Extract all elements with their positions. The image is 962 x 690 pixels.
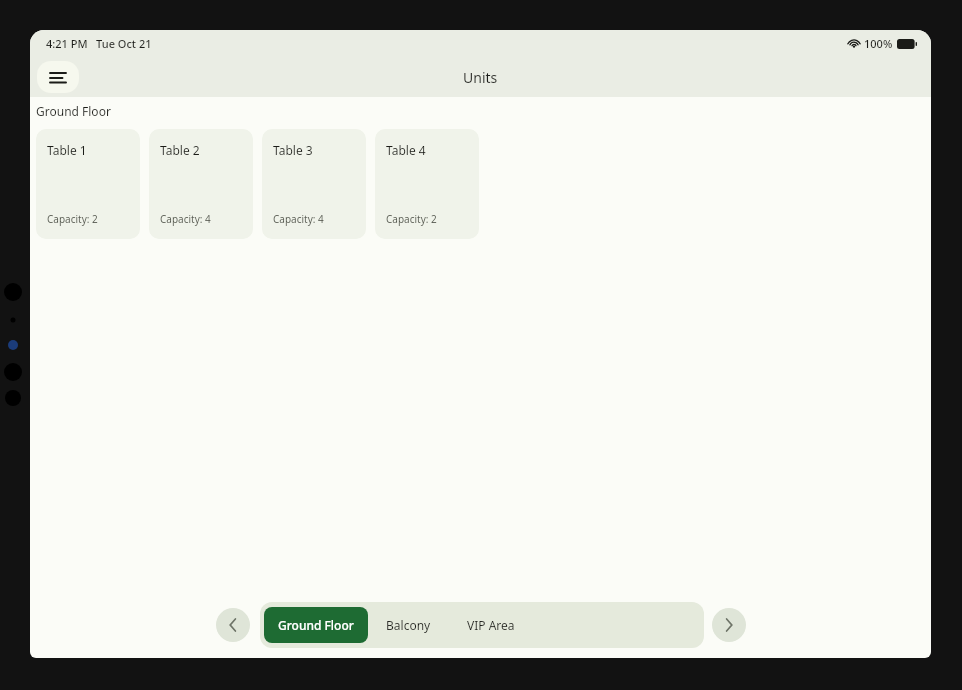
staticText: Ground Floor [36,103,111,119]
button[interactable]: Next [712,608,746,642]
staticText: Table 4 [386,142,426,158]
button[interactable]: Table 1 [36,129,140,239]
button[interactable]: Table 2 [149,129,253,239]
staticText: Ground Floor [278,617,354,633]
staticText: Capacity: 2 [47,212,98,226]
staticText: Units [463,68,498,87]
button[interactable]: Table 4 [375,129,479,239]
staticText: VIP Area [467,617,515,633]
staticText: Table 2 [160,142,200,158]
staticText: Capacity: 4 [273,212,324,226]
staticText: Table 3 [273,142,313,158]
staticText: Table 1 [47,142,87,158]
button[interactable]: Table 3 [262,129,366,239]
button[interactable]: Open navigation menu [37,61,79,93]
button[interactable]: VIP Area [449,607,533,643]
button[interactable]: Balcony [368,607,449,643]
staticText: 4:21 PM Tue Oct 21 [46,36,152,51]
staticText: Capacity: 2 [386,212,437,226]
staticText: Capacity: 4 [160,212,211,226]
staticText: Balcony [386,617,431,633]
staticText: 100% [864,36,893,51]
button[interactable]: Ground Floor [264,607,368,643]
button[interactable]: Previous [216,608,250,642]
